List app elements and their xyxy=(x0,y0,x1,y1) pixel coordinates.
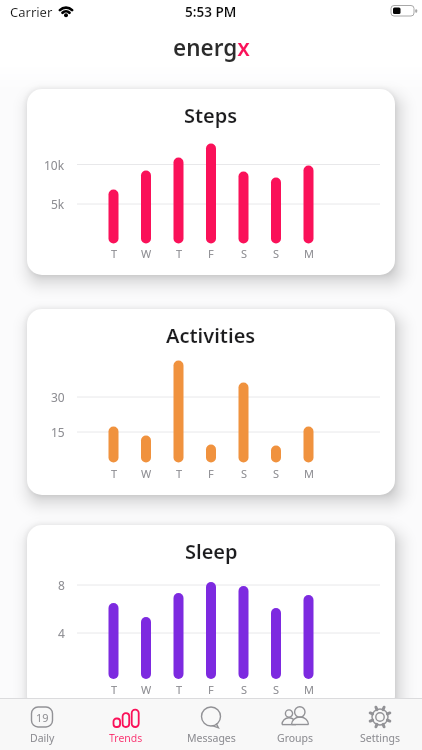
button[interactable]: 19 xyxy=(0,698,84,750)
staticText: W xyxy=(141,466,152,481)
staticText: T xyxy=(111,682,118,697)
staticText: Settings xyxy=(360,731,400,745)
button[interactable]: Steps xyxy=(27,89,395,275)
staticText: W xyxy=(141,246,152,261)
staticText: M xyxy=(304,682,314,697)
staticText: Carrier xyxy=(10,3,53,19)
button[interactable]: Trends xyxy=(84,698,168,750)
staticText: Daily xyxy=(30,731,55,745)
staticText: T xyxy=(111,246,118,261)
staticText: 10k xyxy=(44,157,65,173)
staticText: 30 xyxy=(51,389,65,405)
staticText: W xyxy=(141,682,152,697)
button[interactable]: Settings xyxy=(338,698,422,750)
staticText: Messages xyxy=(187,731,236,745)
staticText: 4 xyxy=(58,625,65,641)
staticText: F xyxy=(208,466,214,481)
staticText: Trends xyxy=(109,731,143,745)
staticText: S xyxy=(273,466,280,481)
staticText: T xyxy=(176,246,183,261)
staticText: energx xyxy=(173,32,250,63)
staticText: T xyxy=(176,682,183,697)
staticText: 8 xyxy=(58,577,65,593)
button[interactable]: Activities xyxy=(27,309,395,495)
staticText: S xyxy=(273,246,280,261)
staticText: M xyxy=(304,246,314,261)
staticText: Groups xyxy=(277,731,314,745)
staticText: 5:53 PM xyxy=(185,3,237,19)
staticText: Activities xyxy=(166,322,256,349)
staticText: S xyxy=(241,246,248,261)
staticText: F xyxy=(208,246,214,261)
staticText: M xyxy=(304,466,314,481)
staticText: 19 xyxy=(36,710,49,725)
staticText: S xyxy=(273,682,280,697)
staticText: S xyxy=(241,466,248,481)
button[interactable]: Messages xyxy=(169,698,253,750)
button[interactable]: Sleep xyxy=(27,525,395,711)
staticText: 5k xyxy=(51,196,65,212)
staticText: Steps xyxy=(184,102,238,129)
staticText: S xyxy=(241,682,248,697)
staticText: 15 xyxy=(51,424,65,440)
staticText: F xyxy=(208,682,214,697)
staticText: Sleep xyxy=(185,538,238,565)
staticText: T xyxy=(176,466,183,481)
button[interactable]: Groups xyxy=(253,698,337,750)
staticText: T xyxy=(111,466,118,481)
